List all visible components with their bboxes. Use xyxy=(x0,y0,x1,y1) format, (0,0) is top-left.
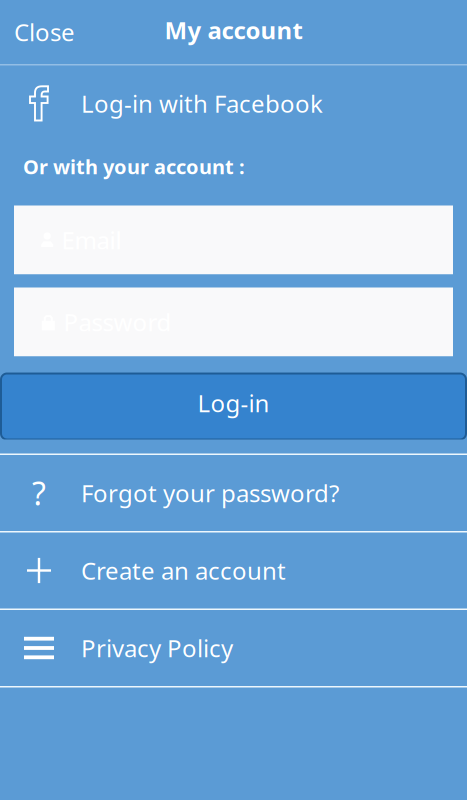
staticText: ? xyxy=(32,472,46,514)
button[interactable]: Create an account xyxy=(0,532,467,608)
staticText: Log-in with Facebook xyxy=(81,88,323,119)
button[interactable]: Log-in with Facebook xyxy=(0,65,467,141)
button[interactable]: Privacy Policy xyxy=(0,610,467,686)
staticText: Privacy Policy xyxy=(81,632,233,664)
staticText: Forgot your password? xyxy=(81,477,339,509)
staticText: Log-in xyxy=(197,387,269,419)
staticText: Close xyxy=(14,16,75,48)
staticText: Or with your account : xyxy=(23,153,245,180)
staticText: My account xyxy=(164,14,302,46)
staticText: Create an account xyxy=(81,555,286,586)
button[interactable]: Close xyxy=(0,0,91,64)
button[interactable]: Log-in xyxy=(0,373,467,439)
button[interactable]: ? xyxy=(0,455,467,531)
